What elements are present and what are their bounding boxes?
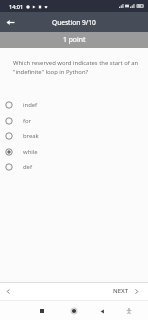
staticText: while (23, 148, 38, 156)
staticText: def (23, 163, 32, 171)
button[interactable]: NEXT (113, 287, 140, 295)
button[interactable]: Back (3, 15, 17, 29)
staticText: Which reserved word indicates the start … (13, 59, 140, 76)
button[interactable]: while (0, 144, 148, 159)
button[interactable]: Back (96, 305, 108, 317)
button[interactable]: Home (68, 305, 80, 317)
staticText: Question 9/10 (52, 18, 96, 27)
staticText: 14:01 (9, 3, 24, 10)
staticText: break (23, 132, 39, 140)
staticText: for (23, 117, 32, 125)
staticText: indef (23, 101, 38, 109)
staticText: NEXT (113, 287, 129, 295)
button[interactable]: Keyboard (123, 305, 135, 317)
button[interactable]: def (0, 159, 148, 174)
button[interactable]: Previous (2, 285, 14, 297)
button[interactable]: indef (0, 97, 148, 112)
button[interactable]: for (0, 113, 148, 128)
button[interactable]: break (0, 128, 148, 143)
button[interactable]: Recents (36, 305, 48, 317)
staticText: 1 point (63, 35, 86, 44)
